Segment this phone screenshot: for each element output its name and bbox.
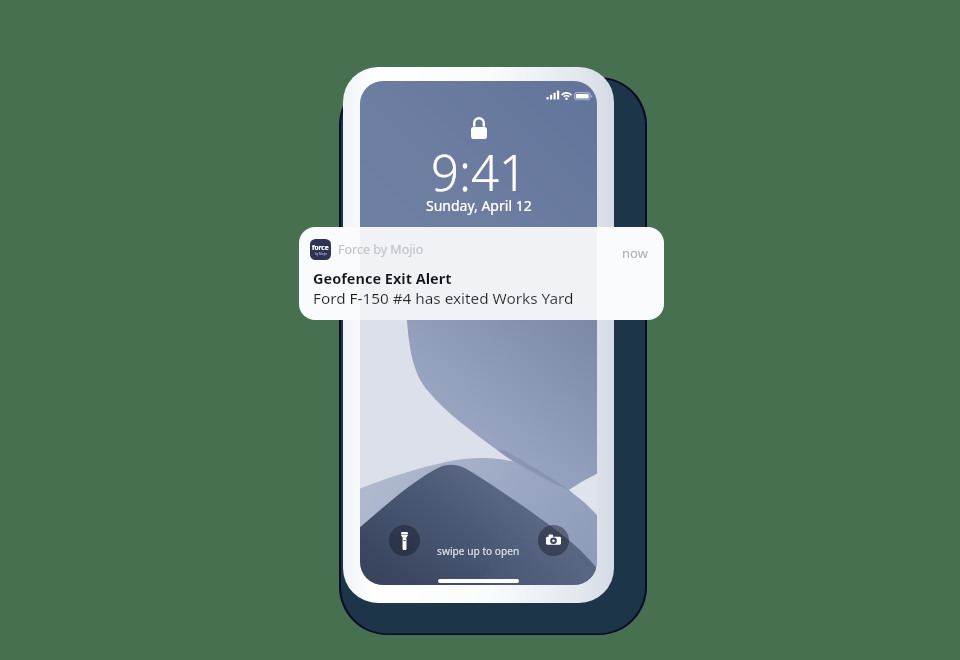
button[interactable]: force bbox=[299, 227, 664, 320]
staticText: 9:41 bbox=[431, 139, 527, 206]
staticText: Ford F-150 #4 has exited Works Yard bbox=[313, 288, 574, 309]
staticText: force bbox=[312, 243, 329, 252]
staticText: Force by Mojio bbox=[338, 241, 424, 258]
staticText: Geofence Exit Alert bbox=[313, 268, 452, 288]
button[interactable]: Camera bbox=[538, 525, 569, 556]
staticText: now bbox=[622, 244, 648, 262]
staticText: Sunday, April 12 bbox=[426, 196, 532, 215]
staticText: swipe up to open bbox=[437, 544, 520, 558]
button[interactable]: Flashlight bbox=[389, 525, 420, 556]
staticText: by Mojio bbox=[315, 252, 327, 256]
